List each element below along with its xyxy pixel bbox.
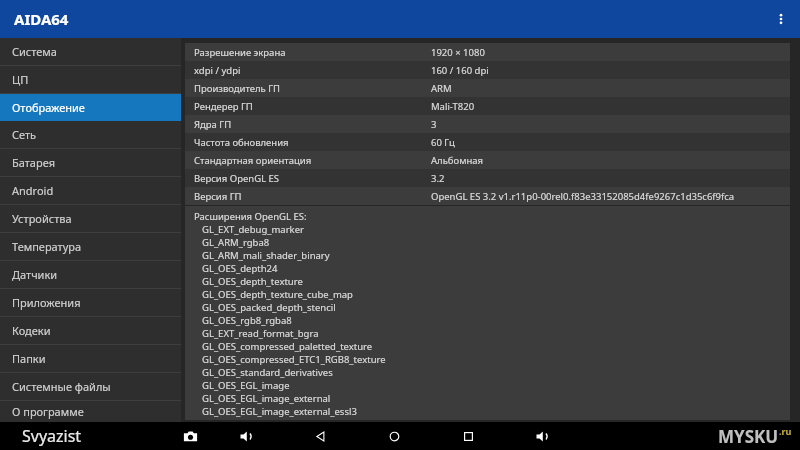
button[interactable]: Производитель ГП: [185, 79, 790, 97]
button[interactable]: Volume up: [528, 422, 556, 450]
staticText: Частота обновления: [194, 136, 431, 149]
button[interactable]: ЦП: [0, 66, 181, 93]
staticText: Ядра ГП: [194, 118, 431, 131]
button[interactable]: Android: [0, 177, 181, 204]
staticText: Кодеки: [12, 323, 51, 338]
button[interactable]: More options: [762, 0, 800, 38]
staticText: Температура: [12, 239, 82, 254]
staticText: Версия ГП: [194, 190, 431, 203]
staticText: GL_ARM_mali_shader_binary: [202, 249, 330, 262]
button[interactable]: Back: [306, 422, 334, 450]
staticText: О программе: [12, 404, 84, 419]
staticText: Стандартная ориентация: [194, 154, 431, 167]
staticText: Android: [12, 183, 54, 198]
button[interactable]: Датчики: [0, 261, 181, 288]
button[interactable]: Кодеки: [0, 317, 181, 344]
staticText: ARM: [431, 82, 452, 95]
staticText: Альбомная: [431, 154, 484, 167]
button[interactable]: Частота обновления: [185, 133, 790, 151]
button[interactable]: Ядра ГП: [185, 115, 790, 133]
staticText: Производитель ГП: [194, 82, 431, 95]
staticText: GL_ARM_rgba8: [202, 236, 270, 249]
staticText: 60 Гц: [431, 136, 455, 149]
staticText: Батарея: [12, 155, 55, 170]
button[interactable]: Расширения OpenGL ES:: [185, 206, 790, 420]
staticText: Разрешение экрана: [194, 46, 431, 59]
staticText: Датчики: [12, 267, 58, 282]
staticText: OpenGL ES 3.2 v1.r11p0-00rel0.f83e331520…: [431, 190, 735, 203]
staticText: 3: [431, 118, 437, 131]
button[interactable]: Версия ГП: [185, 187, 790, 205]
button[interactable]: О программе: [0, 401, 181, 422]
staticText: MYSKU: [718, 425, 779, 448]
staticText: Mali-T820: [431, 100, 475, 113]
button[interactable]: Recents: [454, 422, 482, 450]
staticText: Системные файлы: [12, 379, 111, 394]
button[interactable]: xdpi / ydpi: [185, 61, 790, 79]
staticText: Расширения OpenGL ES:: [194, 210, 307, 223]
staticText: 3.2: [431, 172, 445, 185]
staticText: 1920 × 1080: [431, 46, 485, 59]
staticText: Svyazist: [22, 425, 82, 447]
staticText: GL_OES_EGL_image: [202, 379, 290, 392]
button[interactable]: Температура: [0, 233, 181, 260]
staticText: GL_OES_depth24: [202, 262, 278, 275]
staticText: ЦП: [12, 72, 29, 87]
staticText: xdpi / ydpi: [194, 64, 431, 77]
button[interactable]: Home: [380, 422, 408, 450]
staticText: GL_OES_depth_texture_cube_map: [202, 288, 353, 301]
staticText: GL_OES_EGL_image_external_essl3: [202, 405, 357, 418]
button[interactable]: Приложения: [0, 289, 181, 316]
staticText: Система: [12, 44, 57, 59]
staticText: Устройства: [12, 211, 72, 226]
staticText: Сеть: [12, 127, 37, 142]
staticText: GL_OES_depth_texture: [202, 275, 303, 288]
staticText: Рендерер ГП: [194, 100, 431, 113]
button[interactable]: Рендерер ГП: [185, 97, 790, 115]
button[interactable]: Стандартная ориентация: [185, 151, 790, 169]
button[interactable]: Система: [0, 38, 181, 65]
staticText: AIDA64: [14, 9, 69, 29]
button[interactable]: Разрешение экрана: [185, 43, 790, 61]
staticText: .ru: [779, 425, 792, 437]
staticText: Папки: [12, 351, 46, 366]
staticText: 160 / 160 dpi: [431, 64, 489, 77]
button[interactable]: Устройства: [0, 205, 181, 232]
staticText: GL_OES_compressed_paletted_texture: [202, 340, 373, 353]
staticText: GL_OES_packed_depth_stencil: [202, 301, 336, 314]
staticText: Приложения: [12, 295, 81, 310]
button[interactable]: Версия OpenGL ES: [185, 169, 790, 187]
button[interactable]: Папки: [0, 345, 181, 372]
button[interactable]: Системные файлы: [0, 373, 181, 400]
button[interactable]: Volume down: [232, 422, 260, 450]
staticText: GL_EXT_read_format_bgra: [202, 327, 319, 340]
staticText: Версия OpenGL ES: [194, 172, 431, 185]
button[interactable]: Сеть: [0, 121, 181, 148]
staticText: GL_EXT_debug_marker: [202, 223, 304, 236]
button[interactable]: Батарея: [0, 149, 181, 176]
staticText: GL_OES_standard_derivatives: [202, 366, 333, 379]
staticText: GL_OES_EGL_image_external: [202, 392, 331, 405]
staticText: Отображение: [12, 100, 85, 115]
staticText: GL_OES_compressed_ETC1_RGB8_texture: [202, 353, 386, 366]
button[interactable]: Отображение: [0, 94, 181, 121]
staticText: GL_OES_rgb8_rgba8: [202, 314, 292, 327]
button[interactable]: Screenshot: [176, 422, 204, 450]
